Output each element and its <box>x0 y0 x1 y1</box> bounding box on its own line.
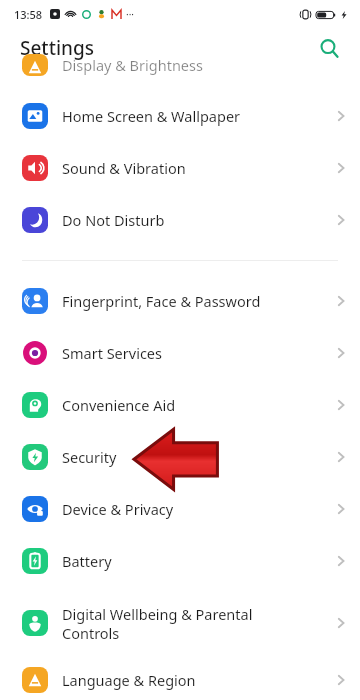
staticText: Do Not Disturb <box>62 210 294 230</box>
staticText: Sound & Vibration <box>62 158 294 178</box>
button[interactable]: Digital Wellbeing & Parental Controls <box>0 587 360 659</box>
button[interactable]: Fingerprint, Face & Password <box>0 275 360 327</box>
button[interactable]: Sound & Vibration <box>0 142 360 194</box>
staticText: Display & Brightness <box>62 55 203 75</box>
button[interactable]: Search <box>312 31 346 65</box>
button[interactable]: Security <box>0 431 360 483</box>
button[interactable]: Home Screen & Wallpaper <box>0 90 360 142</box>
button[interactable]: Do Not Disturb <box>0 194 360 246</box>
staticText: Battery <box>62 551 294 571</box>
staticText: Convenience Aid <box>62 395 294 415</box>
button[interactable]: Convenience Aid <box>0 379 360 431</box>
staticText: Fingerprint, Face & Password <box>62 291 294 311</box>
staticText: ··· <box>126 7 135 21</box>
staticText: Security <box>62 447 294 467</box>
button[interactable]: Language & Region <box>0 659 360 700</box>
button[interactable]: Smart Services <box>0 327 360 379</box>
button[interactable]: Battery <box>0 535 360 587</box>
button[interactable]: Display & Brightness <box>0 68 360 90</box>
staticText: Device & Privacy <box>62 499 294 519</box>
staticText: Smart Services <box>62 343 294 363</box>
staticText: Home Screen & Wallpaper <box>62 106 294 126</box>
staticText: Digital Wellbeing & Parental Controls <box>62 604 294 643</box>
staticText: Settings <box>20 35 94 61</box>
button[interactable]: Device & Privacy <box>0 483 360 535</box>
staticText: Language & Region <box>62 670 294 690</box>
staticText: 13:58 <box>14 7 43 22</box>
